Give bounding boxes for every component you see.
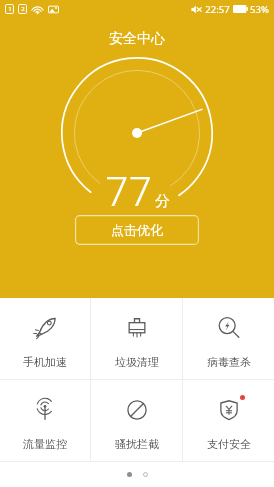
staticText: 垃圾清理 (115, 355, 159, 369)
staticText: 流量监控 (23, 437, 67, 451)
staticText: 53% (250, 3, 269, 16)
staticText: 点击优化 (111, 222, 163, 238)
button[interactable]: 骚扰拦截 (91, 380, 182, 461)
staticText: 2 (21, 5, 25, 13)
staticText: 支付安全 (207, 437, 251, 451)
other: 流量监控 (31, 396, 59, 424)
button[interactable]: 点击优化 (75, 215, 199, 245)
staticText: 1 (8, 5, 12, 13)
other: 垃圾清理 (123, 314, 151, 342)
other: 病毒查杀 (215, 314, 243, 342)
staticText: 22:57 (205, 3, 230, 16)
staticText: 安全中心 (109, 30, 165, 48)
staticText: 病毒查杀 (207, 355, 251, 369)
staticText: 分 (155, 192, 170, 211)
staticText: 手机加速 (23, 355, 67, 369)
other: 支付安全 (215, 396, 243, 424)
button[interactable]: 手机加速 (0, 298, 90, 379)
other: 手机加速 (31, 314, 59, 342)
staticText: 骚扰拦截 (115, 437, 159, 451)
other: 骚扰拦截 (123, 396, 151, 424)
staticText: 77 (105, 162, 152, 218)
button[interactable]: 垃圾清理 (91, 298, 182, 379)
button[interactable]: 流量监控 (0, 380, 90, 461)
button[interactable]: 支付安全 (183, 380, 274, 461)
button[interactable]: 病毒查杀 (183, 298, 274, 379)
